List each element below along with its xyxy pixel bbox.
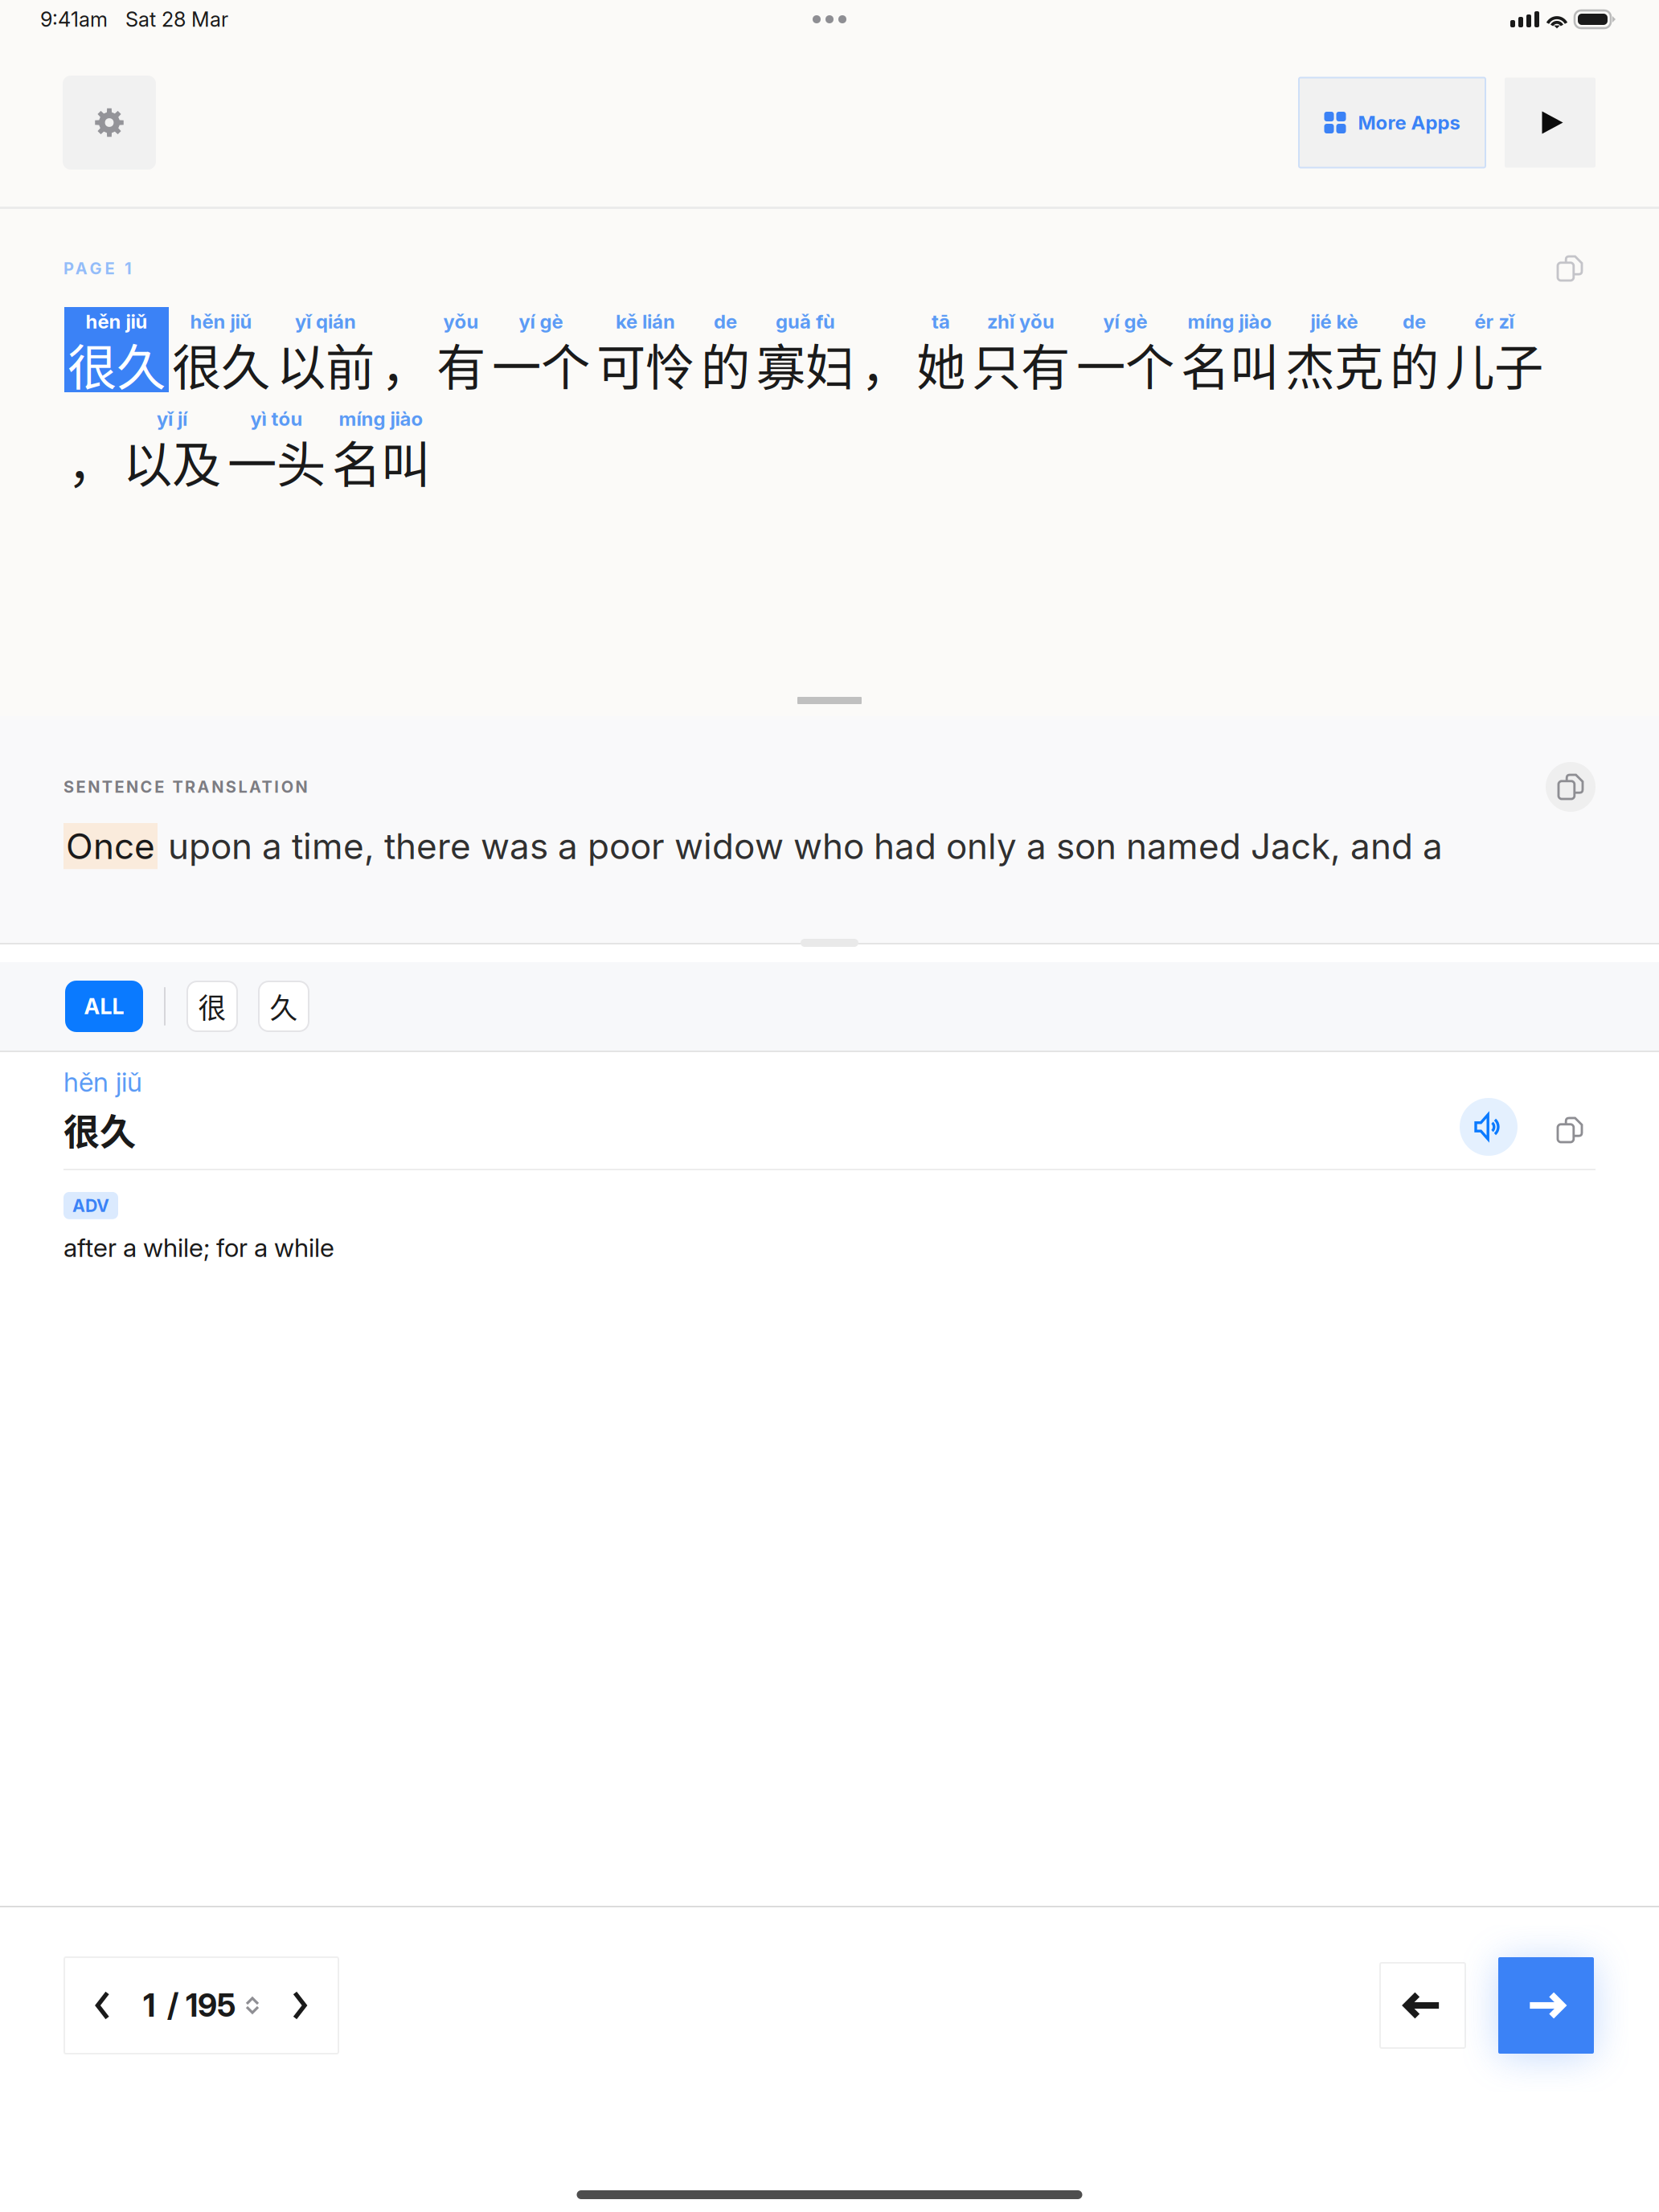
button[interactable]: 很 <box>187 981 237 1031</box>
staticText: 9:41am <box>40 7 108 32</box>
button[interactable]: Copy sentence <box>1544 243 1596 294</box>
staticText: 很久 <box>68 328 166 400</box>
staticText: 很 <box>198 986 226 1027</box>
staticText: 杰克 <box>1285 328 1383 400</box>
staticText: 一个 <box>492 328 590 400</box>
button[interactable]: Previous page <box>64 1957 141 2054</box>
staticText: SENTENCE TRANSLATION <box>63 777 307 797</box>
button[interactable]: Next page <box>261 1957 338 2054</box>
staticText: 一头 <box>227 426 326 497</box>
staticText: 一个 <box>1076 328 1174 400</box>
staticText: after a while; for a while <box>63 1232 334 1263</box>
staticText: yǐ qián <box>295 310 356 333</box>
staticText: zhǐ yǒu <box>987 310 1055 333</box>
button[interactable]: Settings <box>63 76 156 170</box>
staticText: 的 <box>1390 328 1439 400</box>
button[interactable]: Copy word <box>1544 1104 1596 1156</box>
staticText: 的 <box>701 328 750 400</box>
staticText: 195 <box>186 1987 236 2024</box>
button[interactable]: More Apps <box>1299 78 1485 168</box>
staticText: yí gè <box>519 310 563 333</box>
staticText: hěn jiǔ <box>86 310 147 333</box>
staticText: ALL <box>84 993 124 1019</box>
staticText: 名叫 <box>1181 328 1279 400</box>
staticText: 寡妇 <box>756 328 854 400</box>
button[interactable]: Copy translation <box>1546 762 1596 812</box>
staticText: ， <box>68 426 117 497</box>
staticText: de <box>714 310 737 333</box>
button[interactable]: ALL <box>65 981 143 1032</box>
button[interactable]: Play <box>1505 78 1596 168</box>
staticText: ， <box>381 328 430 400</box>
staticText: yì tóu <box>250 407 303 430</box>
staticText: 很久 <box>172 328 270 400</box>
staticText: 很久 <box>63 1103 136 1156</box>
staticText: / <box>167 1987 178 2024</box>
staticText: yǒu <box>443 310 479 333</box>
staticText: Once <box>66 825 155 867</box>
staticText: 1 <box>143 1987 155 2024</box>
staticText: 可怜 <box>596 328 694 400</box>
staticText: yí gè <box>1103 310 1147 333</box>
staticText: tā <box>932 310 950 333</box>
staticText: jié kè <box>1311 310 1358 333</box>
staticText: More Apps <box>1358 111 1460 134</box>
staticText: guǎ fù <box>776 310 835 333</box>
staticText: 儿子 <box>1445 328 1543 400</box>
staticText: hěn jiǔ <box>63 1066 142 1098</box>
staticText: míng jiào <box>339 407 423 430</box>
staticText: de <box>1403 310 1426 333</box>
staticText: Sat 28 Mar <box>125 7 228 32</box>
button[interactable]: Play pronunciation <box>1460 1098 1518 1156</box>
staticText: 名叫 <box>332 426 430 497</box>
staticText: kě lián <box>616 310 675 333</box>
staticText: ， <box>861 328 910 400</box>
staticText: ér zǐ <box>1475 310 1514 333</box>
staticText: 久 <box>270 986 298 1027</box>
button[interactable]: Next <box>1498 1957 1594 2054</box>
staticText: PAGE 1 <box>63 259 132 278</box>
button[interactable]: Previous <box>1380 1963 1465 2048</box>
staticText: ADV <box>72 1195 109 1216</box>
staticText: upon a time, there was a poor widow who … <box>168 825 1443 867</box>
staticText: hěn jiǔ <box>190 310 252 333</box>
staticText: míng jiào <box>1188 310 1272 333</box>
staticText: yǐ jí <box>157 407 187 430</box>
button[interactable]: 1 <box>141 1957 261 2054</box>
staticText: 以及 <box>123 426 221 497</box>
staticText: 只有 <box>972 328 1070 400</box>
staticText: 她 <box>916 328 965 400</box>
staticText: 以前 <box>276 328 375 400</box>
button[interactable]: 久 <box>259 981 309 1031</box>
staticText: 有 <box>436 328 485 400</box>
